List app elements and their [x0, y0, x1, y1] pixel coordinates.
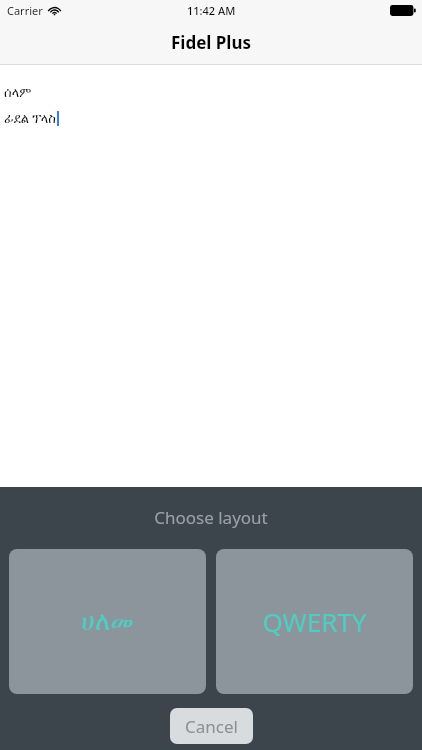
staticText: Cancel [185, 715, 238, 738]
button[interactable]: QWERTY [216, 549, 413, 694]
staticText: ሰላም [4, 87, 32, 100]
staticText: 11:42 AM [187, 3, 236, 18]
button[interactable]: ሀለመ [9, 549, 206, 694]
button[interactable]: ሰላም [0, 65, 422, 487]
staticText: ሀለመ [81, 609, 134, 635]
staticText: Fidel Plus [171, 31, 252, 54]
staticText: Carrier [7, 3, 43, 18]
staticText: Choose layout [154, 506, 268, 529]
staticText: ፊደል ፕላስ [4, 109, 56, 127]
staticText: QWERTY [262, 604, 367, 639]
button[interactable]: Cancel [170, 708, 253, 744]
